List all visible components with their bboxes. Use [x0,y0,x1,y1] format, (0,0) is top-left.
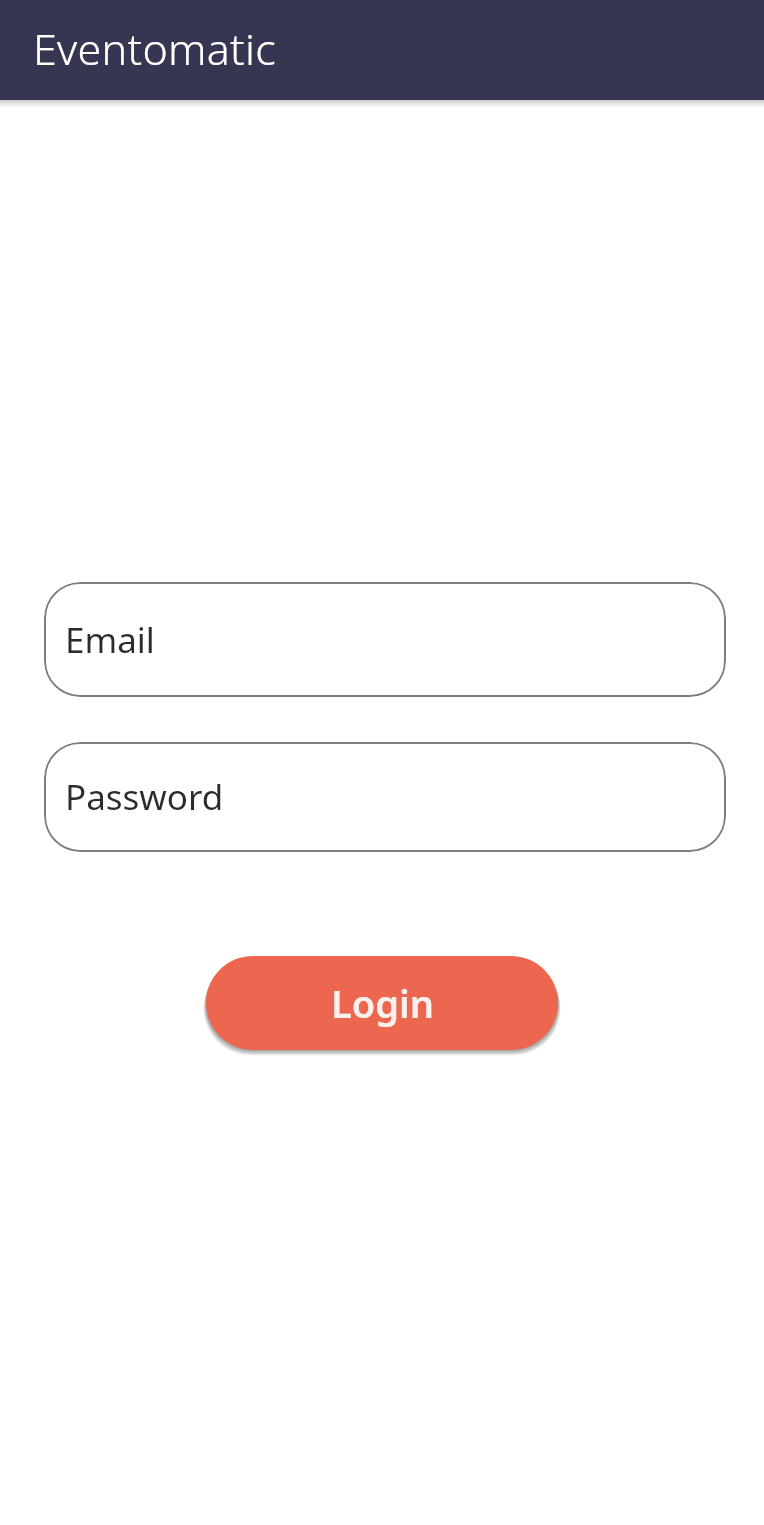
staticText: Eventomatic [33,19,277,78]
staticText: Password [65,773,224,821]
button[interactable]: Login [206,956,558,1050]
button[interactable]: Password [44,742,726,852]
staticText: Email [65,616,155,664]
button[interactable]: Email [44,582,726,697]
staticText: Login [331,977,434,1029]
